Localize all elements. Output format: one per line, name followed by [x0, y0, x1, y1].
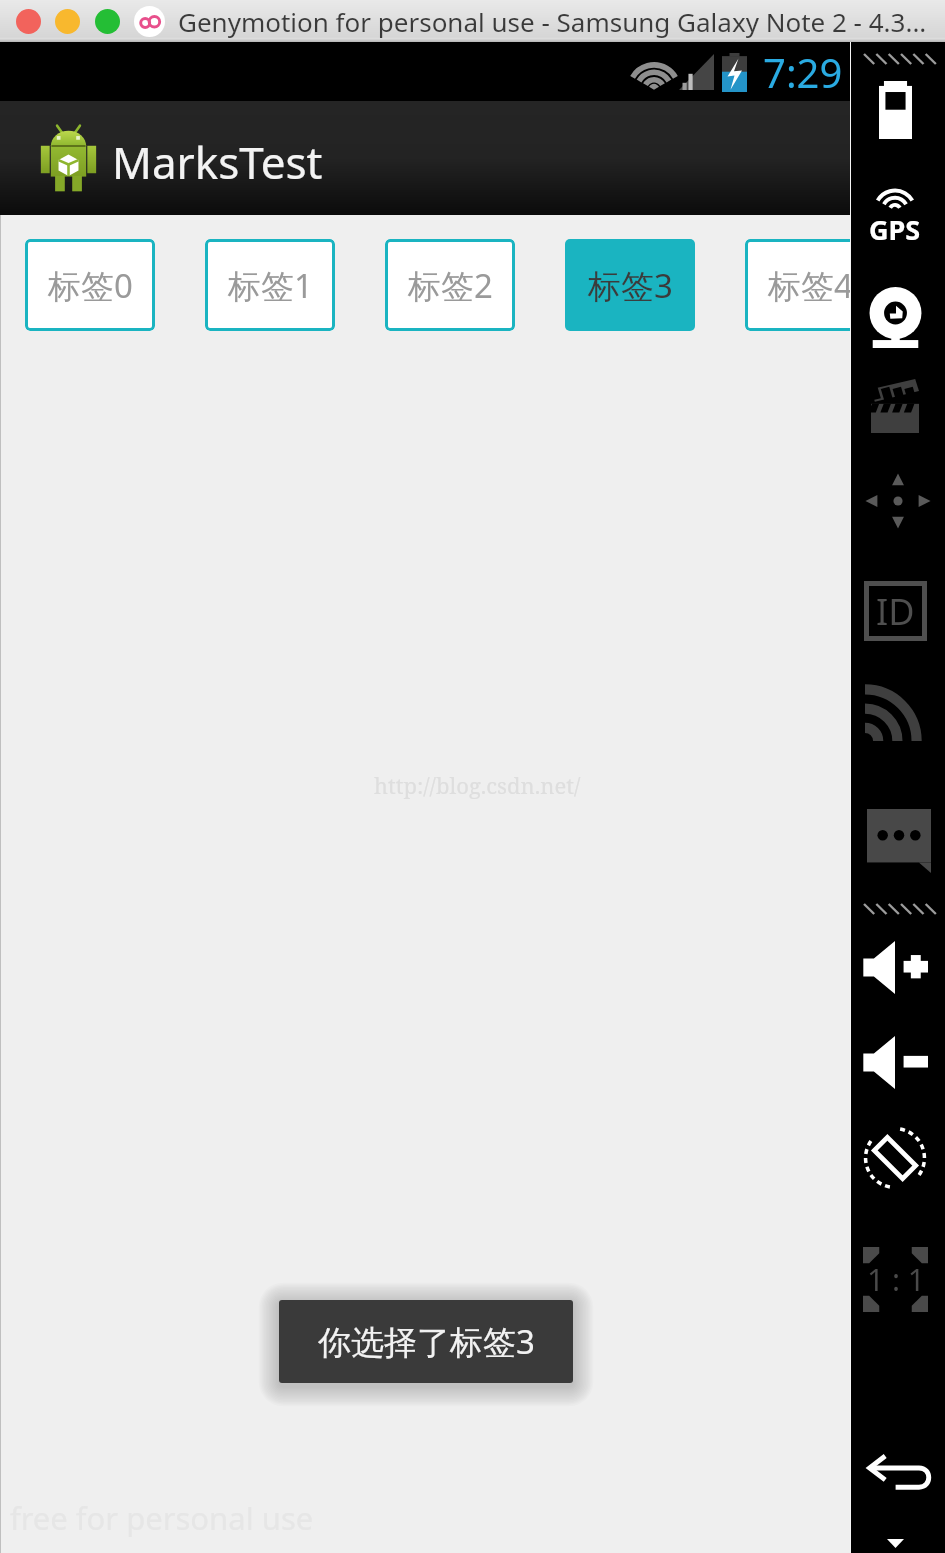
- button[interactable]: Separator: [864, 53, 938, 65]
- staticText: 7:29: [763, 45, 843, 99]
- button[interactable]: More: [887, 1539, 904, 1548]
- button[interactable]: Separator: [864, 903, 938, 915]
- staticText: Genymotion for personal use - Samsung Ga…: [178, 4, 927, 39]
- button[interactable]: 标签2: [385, 239, 515, 331]
- staticText: GPS: [869, 211, 921, 248]
- staticText: 标签3: [588, 263, 673, 308]
- staticText: http://blog.csdn.net/: [374, 770, 581, 800]
- button[interactable]: Battery: [879, 81, 912, 139]
- button[interactable]: Network: [865, 681, 925, 741]
- button[interactable]: Back: [867, 1455, 932, 1490]
- staticText: free for personal use: [10, 1497, 314, 1539]
- staticText: 标签2: [408, 263, 493, 308]
- button[interactable]: Messages: [867, 809, 931, 873]
- button[interactable]: Maximize: [95, 9, 120, 34]
- button[interactable]: Scale 1 to 1: [863, 1247, 928, 1312]
- button[interactable]: Close: [16, 9, 41, 34]
- button[interactable]: 标签3: [565, 239, 695, 331]
- staticText: 1 : 1: [867, 1259, 925, 1300]
- button[interactable]: Rotate: [863, 1127, 927, 1189]
- staticText: 标签0: [48, 263, 133, 308]
- button[interactable]: Dpad: [863, 471, 933, 531]
- button[interactable]: Record: [871, 379, 919, 433]
- button[interactable]: Minimize: [55, 9, 80, 34]
- button[interactable]: Volume down: [862, 1036, 928, 1089]
- button[interactable]: Volume up: [862, 941, 928, 994]
- staticText: 标签1: [228, 263, 313, 308]
- staticText: ID: [876, 587, 915, 636]
- button[interactable]: Camera: [869, 287, 922, 348]
- staticText: 标签4: [768, 263, 853, 308]
- staticText: MarksTest: [112, 132, 323, 192]
- button[interactable]: 标签1: [205, 239, 335, 331]
- button[interactable]: Identifiers: [864, 581, 927, 641]
- button[interactable]: 标签4: [745, 239, 875, 331]
- staticText: 你选择了标签3: [318, 1319, 535, 1364]
- button[interactable]: 标签0: [25, 239, 155, 331]
- button[interactable]: GPS: [869, 188, 921, 248]
